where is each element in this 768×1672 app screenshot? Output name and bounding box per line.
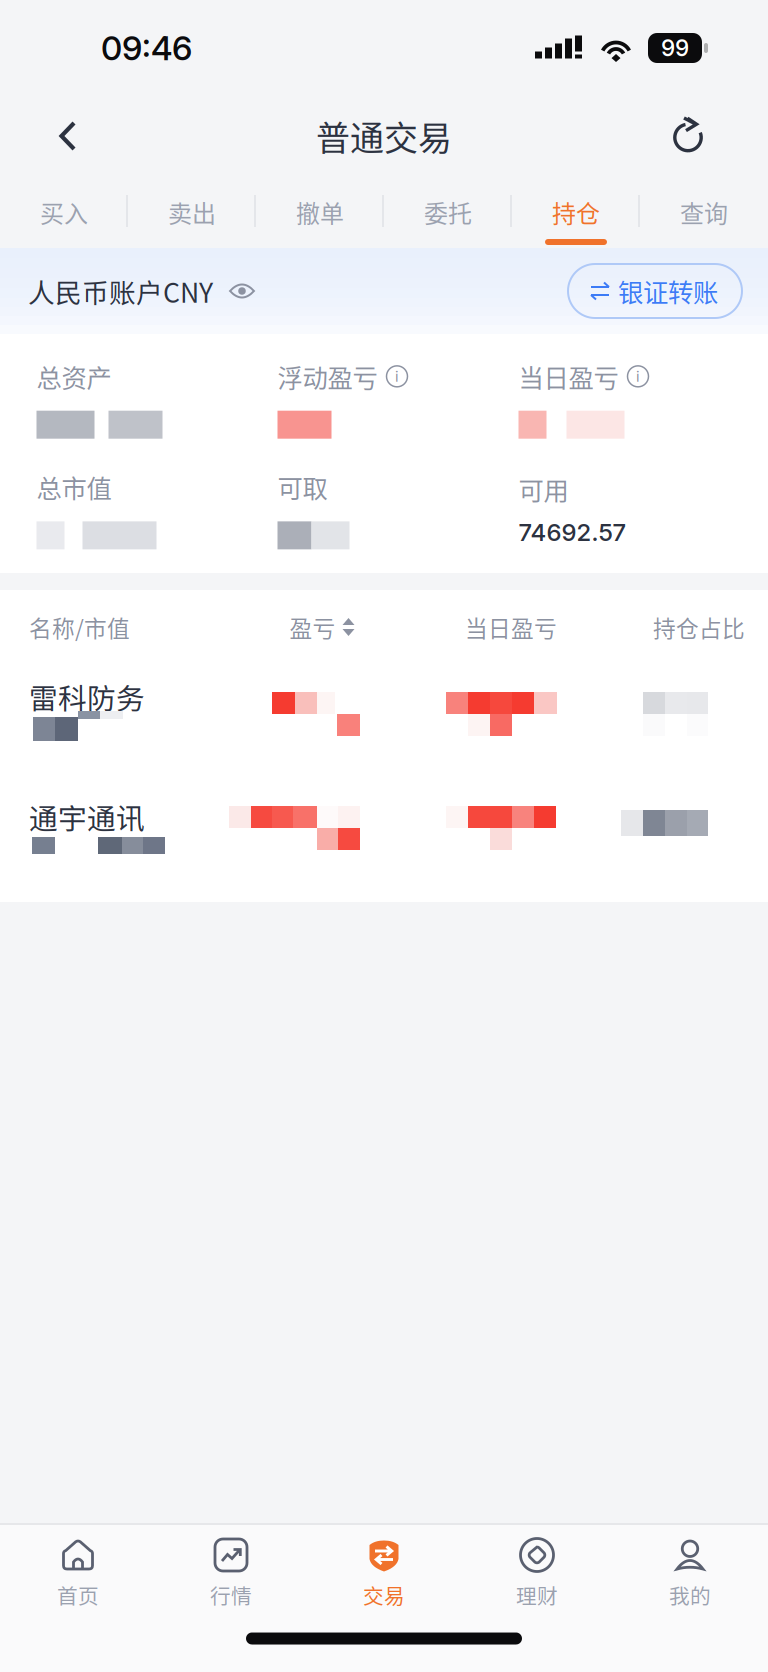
button[interactable]: 雷科防务: [0, 664, 768, 782]
staticText: 普通交易: [316, 111, 452, 161]
button[interactable]: 持仓: [512, 176, 640, 248]
staticText: 人民币账户CNY: [28, 272, 213, 310]
staticText: 理财: [516, 1580, 558, 1610]
staticText: 我的: [669, 1580, 711, 1610]
button[interactable]: Refresh: [650, 97, 728, 175]
staticText: i: [636, 367, 640, 385]
button[interactable]: 委托: [384, 176, 512, 248]
staticText: 当日盈亏: [465, 611, 557, 643]
staticText: 查询: [680, 195, 728, 229]
button[interactable]: 买入: [0, 176, 128, 248]
button[interactable]: Back: [26, 97, 110, 175]
staticText: 99: [661, 34, 689, 62]
staticText: 持仓占比: [653, 611, 745, 643]
staticText: 可用: [518, 471, 568, 508]
staticText: 浮动盈亏: [277, 358, 377, 395]
button[interactable]: 我的: [613, 1525, 766, 1625]
staticText: 买入: [40, 195, 88, 229]
staticText: 盈亏: [289, 611, 335, 643]
button[interactable]: Toggle balance visibility: [213, 269, 271, 313]
staticText: 当日盈亏: [518, 358, 618, 395]
staticText: 74692.57: [518, 518, 626, 547]
button[interactable]: 卖出: [128, 176, 256, 248]
button[interactable]: 理财: [460, 1525, 613, 1625]
staticText: 持仓: [552, 195, 600, 229]
staticText: 可取: [277, 469, 327, 505]
staticText: 行情: [210, 1580, 252, 1610]
staticText: 卖出: [168, 195, 216, 229]
staticText: 09:46: [101, 28, 192, 68]
staticText: 名称/市值: [29, 611, 130, 643]
staticText: 总资产: [36, 358, 111, 395]
staticText: 总市值: [36, 469, 111, 505]
button[interactable]: 撤单: [256, 176, 384, 248]
staticText: 撤单: [296, 195, 344, 229]
staticText: 交易: [363, 1580, 405, 1610]
button[interactable]: 银证转账: [568, 264, 742, 318]
staticText: i: [395, 367, 399, 385]
button[interactable]: 首页: [1, 1525, 154, 1625]
button[interactable]: 行情: [154, 1525, 307, 1625]
button[interactable]: 查询: [640, 176, 768, 248]
staticText: 委托: [424, 195, 472, 229]
staticText: 银证转账: [618, 273, 718, 309]
staticText: 雷科防务: [29, 676, 145, 717]
button[interactable]: 交易: [307, 1525, 460, 1625]
staticText: 首页: [57, 1580, 99, 1610]
button[interactable]: 通宇通讯: [0, 782, 768, 900]
staticText: 通宇通讯: [29, 796, 145, 837]
